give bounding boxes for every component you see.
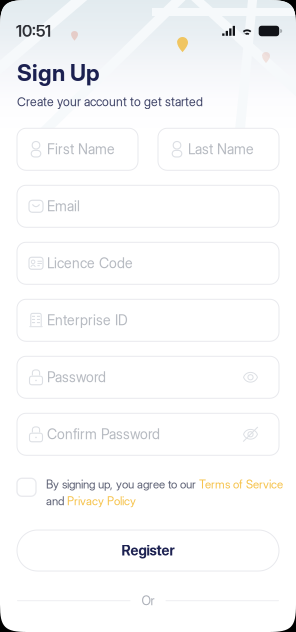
- staticText: By signing up, you agree to our: [46, 477, 199, 491]
- staticText: Terms of Service: [199, 477, 283, 491]
- button[interactable]: Confirm Password: [17, 413, 279, 455]
- staticText: Register: [121, 542, 174, 559]
- staticText: Licence Code: [47, 255, 133, 272]
- button[interactable]: Email: [17, 185, 279, 227]
- button[interactable]: Register: [0, 508, 296, 571]
- staticText: Create your account to get started: [17, 94, 203, 109]
- staticText: Confirm Password: [47, 426, 160, 443]
- button[interactable]: First Name: [17, 128, 138, 170]
- button[interactable]: Password: [17, 356, 279, 398]
- staticText: First Name: [47, 141, 115, 158]
- button[interactable]: Last Name: [158, 128, 279, 170]
- staticText: Sign Up: [17, 59, 100, 86]
- button[interactable]: By signing up, you agree to our: [0, 455, 296, 508]
- staticText: Password: [47, 369, 106, 386]
- staticText: Privacy Policy: [67, 494, 136, 508]
- staticText: Email: [47, 198, 80, 215]
- staticText: Last Name: [188, 141, 254, 158]
- staticText: Enterprise ID: [47, 312, 128, 329]
- button[interactable]: Licence Code: [17, 242, 279, 284]
- staticText: and: [46, 494, 67, 508]
- button[interactable]: Enterprise ID: [17, 299, 279, 341]
- staticText: 10:51: [16, 21, 51, 41]
- staticText: Or: [141, 593, 154, 608]
